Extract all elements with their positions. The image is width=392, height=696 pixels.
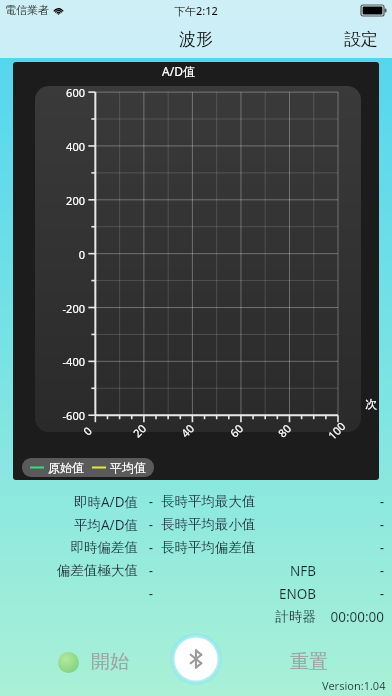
staticText: A/D值 [162, 63, 195, 79]
staticText: NFB [161, 562, 316, 580]
staticText: 開始 [91, 650, 129, 674]
staticText: - [322, 539, 384, 557]
staticText: 長時平均偏差值 [161, 539, 316, 556]
staticText: - [146, 562, 156, 580]
staticText: 原始值 [48, 460, 84, 475]
staticText: ENOB [161, 585, 316, 603]
staticText: 即時A/D值 [8, 493, 138, 511]
staticText: - [322, 516, 384, 534]
staticText: - [146, 539, 156, 557]
staticText: 400 [13, 139, 85, 154]
button[interactable]: 重置 [284, 644, 334, 680]
staticText: 波形 [179, 29, 213, 50]
staticText: 偏差值極大值 [8, 562, 138, 579]
staticText: - [146, 516, 156, 534]
staticText: 20 [130, 421, 149, 440]
staticText: 60 [227, 421, 246, 440]
staticText: -200 [13, 301, 85, 316]
staticText: 長時平均最小值 [161, 516, 316, 533]
staticText: Version:1.04 [322, 678, 386, 693]
staticText: - [146, 493, 156, 511]
staticText: 40 [178, 421, 197, 440]
staticText: 平均值 [110, 460, 146, 475]
staticText: 平均A/D值 [8, 516, 138, 534]
staticText: 電信業者 [5, 3, 49, 17]
staticText: -400 [13, 354, 85, 369]
staticText: 重置 [290, 650, 328, 674]
staticText: - [146, 585, 156, 603]
staticText: 00:00:00 [322, 608, 384, 626]
staticText: 設定 [344, 29, 378, 50]
button[interactable]: Bluetooth [170, 633, 222, 685]
staticText: 0 [13, 247, 85, 262]
staticText: -600 [13, 408, 85, 423]
button[interactable]: 開始 [52, 644, 135, 680]
staticText: - [322, 585, 384, 603]
staticText: 計時器 [161, 608, 316, 625]
staticText: 80 [275, 421, 294, 440]
staticText: - [322, 562, 384, 580]
staticText: 次 [365, 396, 377, 411]
staticText: - [322, 493, 384, 511]
button[interactable]: 設定 [330, 23, 392, 56]
staticText: 600 [13, 85, 85, 100]
staticText: 即時偏差值 [8, 539, 138, 556]
staticText: 長時平均最大值 [161, 493, 316, 510]
staticText: 100 [324, 418, 348, 442]
staticText: 0 [80, 423, 95, 438]
staticText: 下午2:12 [174, 3, 218, 18]
staticText: 200 [13, 193, 85, 208]
